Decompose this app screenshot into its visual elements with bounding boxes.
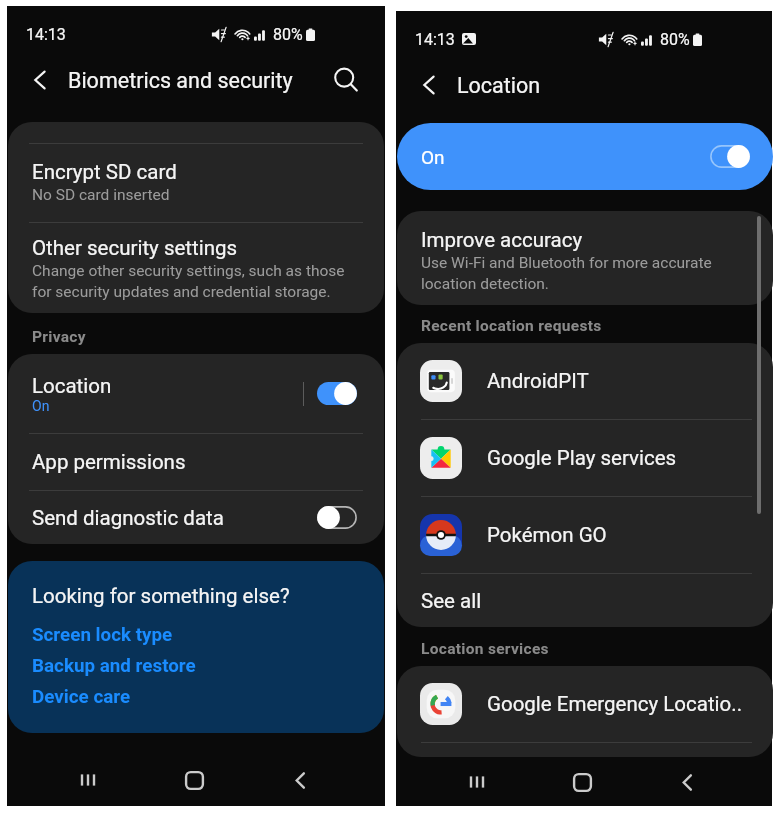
staticText: App permissions [32, 450, 186, 474]
staticText: Privacy [32, 328, 86, 346]
staticText: No SD card inserted [32, 186, 170, 204]
button[interactable]: Back [26, 65, 56, 95]
staticText: Google Play services [487, 446, 677, 470]
staticText: secure. [31, 114, 82, 132]
button[interactable]: Backup and restore [32, 655, 196, 677]
staticText: Google Emergency Locatio.. [487, 692, 743, 716]
staticText: 14:13 [26, 25, 66, 44]
button[interactable]: Back [247, 754, 353, 806]
button[interactable]: On [397, 123, 773, 190]
button[interactable]: See all [397, 574, 773, 627]
button[interactable]: Improve accuracy [397, 211, 773, 305]
staticText: Location [32, 374, 112, 398]
button[interactable]: Pokémon GO [397, 497, 773, 573]
button[interactable]: Recent apps [424, 756, 530, 808]
button[interactable]: Toggle [317, 506, 357, 529]
staticText: See all [421, 589, 482, 613]
button[interactable]: Encrypt SD card [8, 144, 384, 222]
button[interactable]: Screen lock type [32, 624, 173, 646]
button[interactable]: Home [141, 754, 247, 806]
staticText: Send diagnostic data [32, 506, 224, 530]
staticText: Improve accuracy [421, 228, 583, 252]
staticText: Recent location requests [421, 317, 602, 335]
button[interactable]: Device care [32, 686, 131, 708]
staticText: Biometrics and security [68, 68, 293, 93]
button[interactable]: Recent apps [35, 754, 141, 806]
button[interactable]: Google Play services [397, 420, 773, 496]
button[interactable]: Search [331, 65, 361, 95]
button[interactable]: Google Emergency Locatio.. [397, 666, 773, 742]
staticText: Looking for something else? [32, 584, 290, 608]
staticText: Change other security settings, such as … [32, 262, 345, 301]
button[interactable]: Toggle [317, 382, 357, 405]
staticText: Pokémon GO [487, 523, 607, 547]
button[interactable]: Back [415, 70, 445, 100]
button[interactable]: Home [530, 756, 635, 808]
staticText: 80% [660, 30, 690, 49]
button[interactable]: App permissions [8, 434, 384, 490]
button[interactable]: Other security settings [8, 223, 384, 312]
staticText: On [32, 398, 50, 414]
staticText: 80% [273, 25, 303, 44]
staticText: Screen lock type [32, 624, 173, 646]
staticText: On [421, 146, 445, 168]
staticText: 14:13 [415, 30, 455, 49]
staticText: Encrypt SD card [32, 160, 177, 184]
button[interactable]: Send diagnostic data [8, 491, 384, 544]
staticText: Location [457, 73, 541, 98]
staticText: Use Wi-Fi and Bluetooth for more accurat… [421, 254, 712, 293]
button[interactable]: Location [8, 354, 384, 433]
staticText: Other security settings [32, 236, 238, 260]
staticText: Location services [421, 640, 549, 658]
staticText: AndroidPIT [487, 369, 589, 393]
staticText: Device care [32, 686, 131, 708]
staticText: Backup and restore [32, 655, 196, 677]
button[interactable]: Back [635, 756, 740, 808]
button[interactable]: AndroidPIT [397, 343, 773, 419]
